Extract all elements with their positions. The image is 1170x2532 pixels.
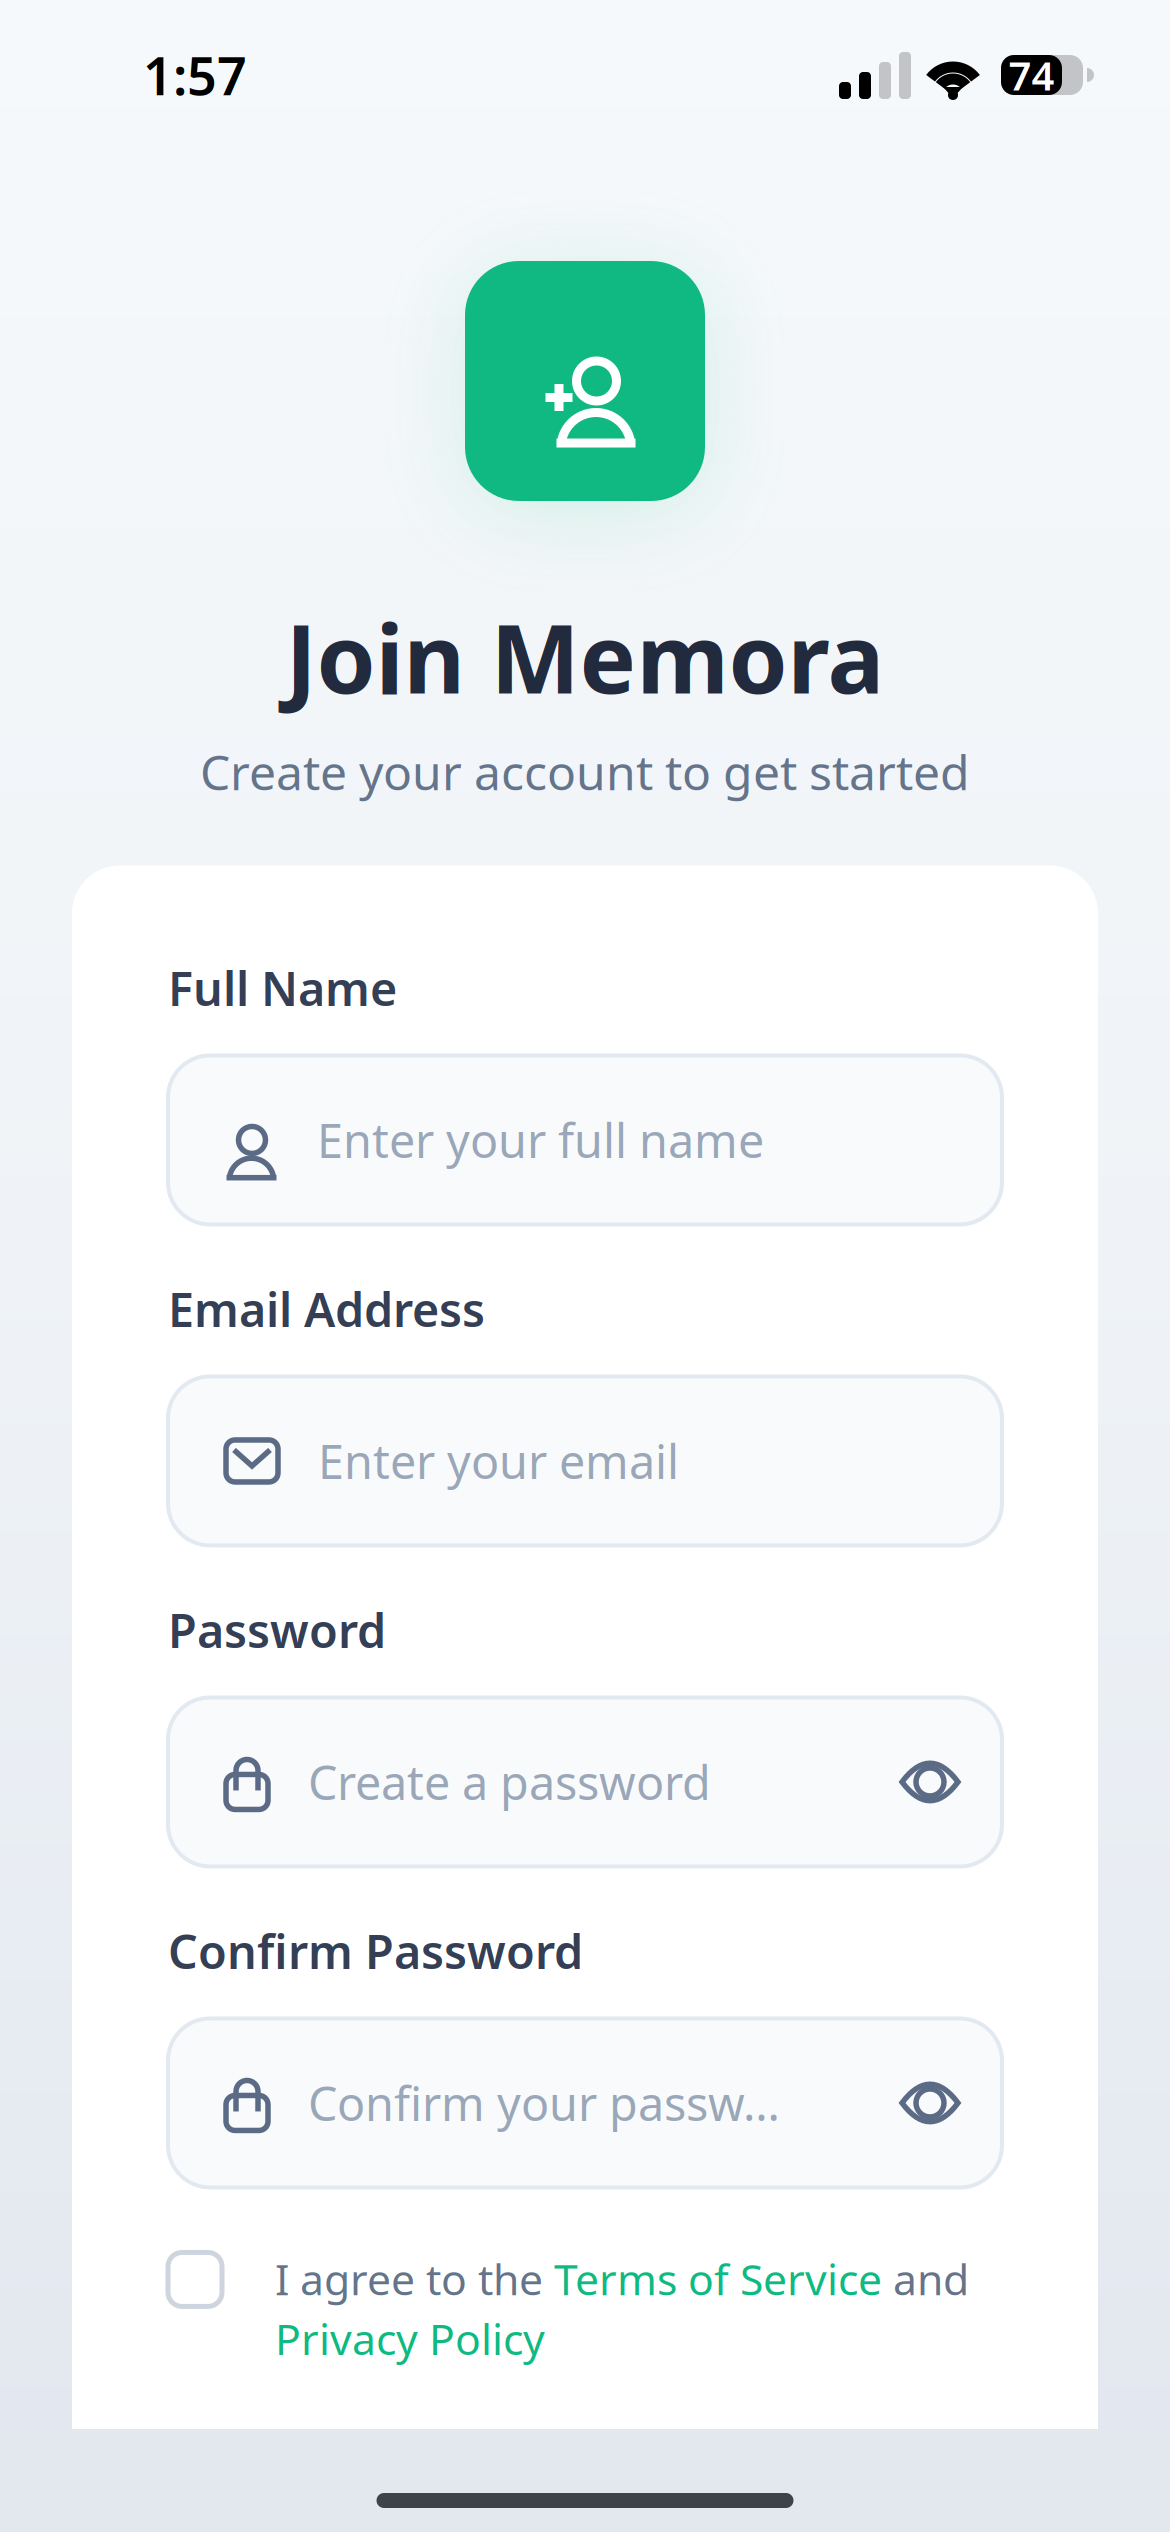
- staticText: 1:57: [143, 40, 247, 110]
- staticText: Enter your full name: [317, 1109, 764, 1171]
- button[interactable]: Enter your email: [168, 1376, 1002, 1545]
- staticText: Privacy Policy: [275, 2310, 545, 2367]
- staticText: Create your account to get started: [200, 740, 970, 803]
- staticText: Confirm Password: [168, 1920, 583, 1982]
- button[interactable]: I agree to the: [168, 2250, 1002, 2367]
- staticText: 74: [1008, 48, 1054, 101]
- staticText: Full Name: [168, 957, 397, 1019]
- staticText: I agree to the: [275, 2250, 554, 2307]
- staticText: Enter your email: [318, 1430, 679, 1492]
- staticText: Join Memora: [285, 594, 884, 720]
- button[interactable]: Create a password: [168, 1697, 1002, 1866]
- button[interactable]: Confirm your passw…: [168, 2018, 1002, 2187]
- button[interactable]: Enter your full name: [168, 1055, 1002, 1224]
- staticText: Password: [168, 1599, 386, 1661]
- staticText: Create a password: [308, 1751, 711, 1813]
- staticText: Email Address: [168, 1278, 485, 1340]
- staticText: Confirm your passw…: [308, 2072, 780, 2134]
- staticText: Terms of Service: [554, 2250, 882, 2307]
- staticText: and: [882, 2250, 969, 2307]
